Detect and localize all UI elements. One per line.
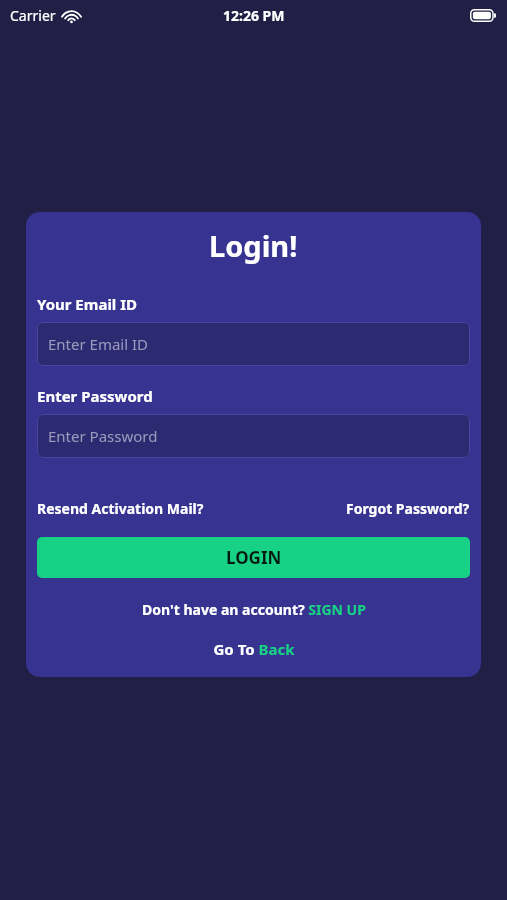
- staticText: Enter Email ID: [48, 334, 149, 354]
- staticText: Enter Password: [48, 426, 158, 446]
- staticText: Go To Back: [213, 639, 295, 659]
- button[interactable]: Enter Password: [37, 414, 470, 458]
- button[interactable]: LOGIN: [37, 537, 470, 578]
- button[interactable]: Don't have an account? SIGN UP: [37, 600, 470, 619]
- button[interactable]: Go To Back: [37, 639, 470, 659]
- staticText: Your Email ID: [37, 294, 138, 314]
- button[interactable]: Enter Email ID: [37, 322, 470, 366]
- staticText: LOGIN: [226, 546, 282, 569]
- staticText: Carrier: [10, 6, 56, 25]
- staticText: Resend Activation Mail?: [37, 499, 204, 518]
- staticText: Login!: [209, 226, 298, 265]
- staticText: Enter Password: [37, 386, 153, 406]
- staticText: Forgot Password?: [346, 499, 470, 518]
- staticText: Don't have an account? SIGN UP: [142, 600, 366, 619]
- staticText: 12:26 PM: [223, 6, 285, 25]
- button[interactable]: Forgot Password?: [346, 499, 470, 518]
- button[interactable]: Resend Activation Mail?: [37, 499, 204, 518]
